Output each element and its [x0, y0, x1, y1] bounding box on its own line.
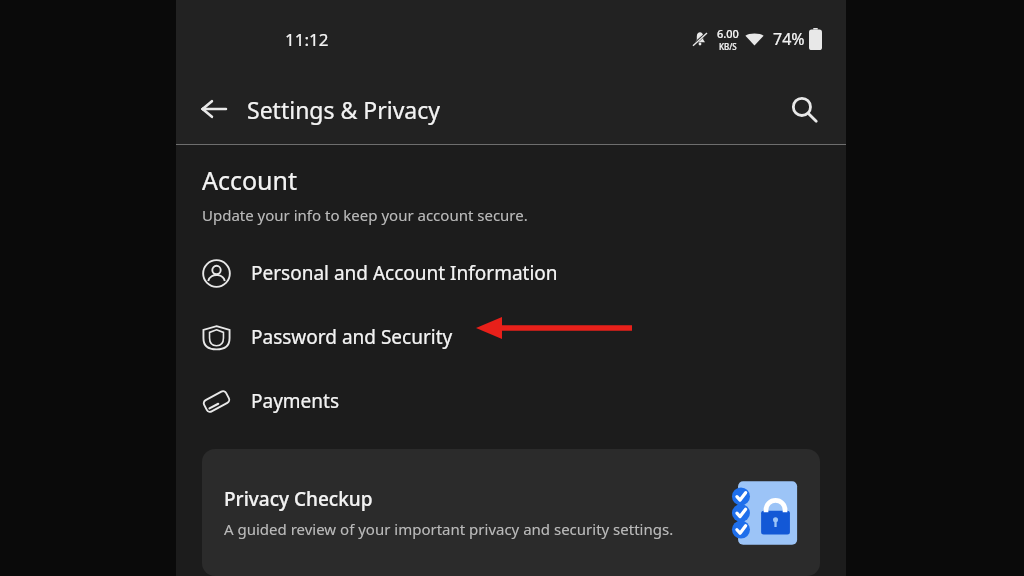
- button[interactable]: Personal and Account Information: [176, 241, 846, 305]
- button[interactable]: Privacy Checkup: [202, 449, 820, 576]
- staticText: 74%: [773, 28, 805, 50]
- staticText: Account: [202, 163, 298, 197]
- button[interactable]: Payments: [176, 369, 846, 433]
- button[interactable]: Search: [780, 85, 828, 133]
- staticText: Password and Security: [251, 324, 453, 350]
- staticText: 11:12: [285, 28, 329, 51]
- staticText: Payments: [251, 388, 340, 414]
- staticText: Update your info to keep your account se…: [202, 205, 528, 225]
- staticText: Privacy Checkup: [224, 486, 373, 512]
- staticText: KB/S: [719, 41, 737, 52]
- button[interactable]: Password and Security: [176, 305, 846, 369]
- staticText: 6.00: [717, 26, 739, 41]
- staticText: Personal and Account Information: [251, 260, 558, 286]
- button[interactable]: Back: [190, 85, 238, 133]
- staticText: Settings & Privacy: [247, 94, 441, 125]
- staticText: A guided review of your important privac…: [224, 519, 674, 539]
